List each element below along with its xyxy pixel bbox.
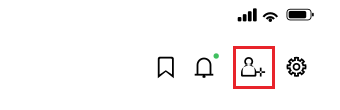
button[interactable]: Settings: [276, 46, 316, 88]
button[interactable]: Bookmarks: [146, 46, 186, 88]
button[interactable]: Notifications: [187, 46, 227, 88]
button[interactable]: Add contact: [233, 46, 275, 89]
